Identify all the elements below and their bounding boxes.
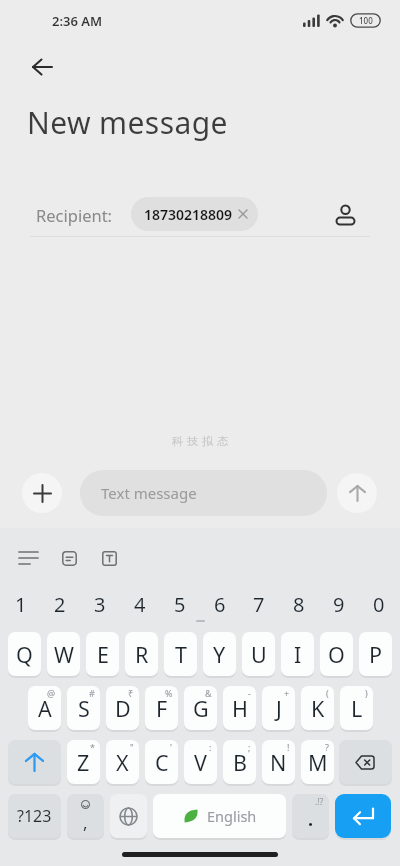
staticText: ) [365,687,368,699]
button[interactable] [10,540,46,576]
button[interactable]: Y [203,632,236,676]
staticText: S [78,694,90,723]
staticText: - [248,687,251,699]
staticText: G [193,694,209,723]
staticText: V [194,748,207,777]
button[interactable]: English [153,794,286,838]
button[interactable]: W [47,632,80,676]
button[interactable]: Text message [80,470,327,516]
staticText: T [175,640,187,669]
staticText: " [130,741,134,753]
staticText: Z [77,748,90,777]
staticText: 2:36 AM [52,12,103,30]
button[interactable]: 2 [43,590,77,618]
staticText: X [116,748,129,777]
button[interactable]: 0 [362,590,396,618]
staticText: 科技拟态 [170,434,230,448]
staticText: English [207,806,257,826]
staticText: 9 [333,591,345,618]
button[interactable] [8,740,61,784]
staticText: 8 [293,591,305,618]
staticText: 2 [54,591,66,618]
button[interactable] [339,740,392,784]
button[interactable] [325,195,365,235]
button[interactable]: X [106,740,139,784]
button[interactable]: 9 [322,590,356,618]
button[interactable]: F [145,686,178,730]
staticText: A [38,694,52,723]
staticText: P [369,640,383,669]
button[interactable]: 3 [83,590,117,618]
button[interactable]: Q [8,632,41,676]
button[interactable]: .!? [292,794,329,838]
button[interactable]: ?123 [8,794,61,838]
button[interactable] [91,540,127,576]
staticText: ! [287,741,290,753]
button[interactable]: E [86,632,119,676]
staticText: 4 [134,591,146,618]
staticText: F [156,694,168,723]
staticText: W [54,640,74,669]
button[interactable]: Z [67,740,100,784]
staticText: M [308,748,328,777]
staticText: % [165,687,173,699]
staticText: J [276,694,282,723]
staticText: 7 [253,591,265,618]
button[interactable]: L [340,686,373,730]
staticText: . [308,807,314,832]
button[interactable]: A [28,686,61,730]
button[interactable]: T [164,632,197,676]
button[interactable]: R [125,632,158,676]
staticText: * [90,741,95,753]
staticText: ; [248,741,251,753]
staticText: 0 [373,591,385,618]
button[interactable]: C [145,740,178,784]
button[interactable]: P [359,632,392,676]
button[interactable]: , [67,794,104,838]
staticText: Y [213,640,226,669]
button[interactable]: G [184,686,217,730]
button[interactable]: 5 [163,590,197,618]
staticText: R [135,640,149,669]
button[interactable]: K [301,686,334,730]
staticText: I [294,640,302,669]
staticText: & [205,687,212,699]
button[interactable] [22,473,62,513]
staticText: , [83,811,88,834]
button[interactable]: V [184,740,217,784]
staticText: H [232,694,248,723]
staticText: 18730218809 [144,205,233,224]
button[interactable] [110,794,147,838]
staticText: 5 [174,591,186,618]
button[interactable]: 7 [242,590,276,618]
button[interactable]: 6 [203,590,237,618]
staticText: + [284,687,290,699]
staticText: : [209,741,212,753]
staticText: 3 [94,591,106,618]
staticText: 6 [214,591,226,618]
button[interactable]: I [281,632,314,676]
staticText: ' [170,741,173,753]
button[interactable]: 4 [123,590,157,618]
button[interactable] [335,794,391,838]
button[interactable]: S [67,686,100,730]
button[interactable]: 1 [4,590,38,618]
button[interactable]: D [106,686,139,730]
staticText: 100 [359,15,373,26]
button[interactable]: H [223,686,256,730]
staticText: B [233,748,247,777]
button[interactable] [20,52,64,82]
button[interactable] [51,540,87,576]
button[interactable]: J [262,686,295,730]
button[interactable]: B [223,740,256,784]
button[interactable]: M [301,740,334,784]
staticText: Recipient: [36,204,113,226]
button[interactable]: O [320,632,353,676]
button[interactable] [337,473,377,513]
staticText: ( [326,687,329,699]
button[interactable]: 8 [282,590,316,618]
button[interactable]: U [242,632,275,676]
button[interactable]: 18730218809 [131,197,258,231]
button[interactable]: N [262,740,295,784]
staticText: K [311,694,325,723]
